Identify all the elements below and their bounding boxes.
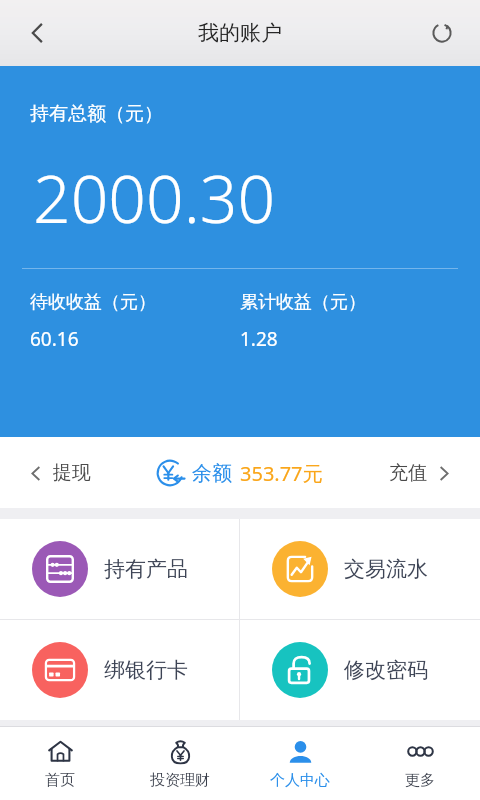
button[interactable]: 余额 (156, 459, 323, 487)
staticText: 个人中心 (270, 771, 330, 790)
button[interactable]: Back (14, 9, 62, 57)
button[interactable]: 更多 (360, 727, 480, 800)
staticText: 60.16 (30, 326, 79, 352)
staticText: 持有产品 (104, 556, 188, 582)
button[interactable]: Refresh (418, 9, 466, 57)
button[interactable]: 充值 (381, 453, 458, 493)
button[interactable]: 投资理财 (120, 727, 240, 800)
button[interactable]: 修改密码 (240, 620, 480, 720)
staticText: 首页 (45, 771, 75, 790)
staticText: 待收收益（元） (30, 291, 156, 314)
button[interactable]: 提现 (22, 453, 99, 493)
button[interactable]: 持有产品 (0, 519, 239, 619)
staticText: 余额 (192, 461, 232, 486)
button[interactable]: 首页 (0, 727, 120, 800)
staticText: 持有总额（元） (30, 102, 163, 126)
staticText: 投资理财 (150, 771, 210, 790)
staticText: 2000.30 (33, 152, 276, 242)
button[interactable]: 交易流水 (240, 519, 480, 619)
staticText: 累计收益（元） (240, 291, 366, 314)
button[interactable]: 绑银行卡 (0, 620, 239, 720)
staticText: 绑银行卡 (104, 657, 188, 683)
staticText: 更多 (405, 771, 435, 790)
staticText: 我的账户 (198, 20, 282, 46)
staticText: 充值 (389, 461, 427, 485)
staticText: 提现 (53, 461, 91, 485)
staticText: 修改密码 (344, 657, 428, 683)
staticText: 353.77元 (240, 460, 323, 487)
staticText: 交易流水 (344, 556, 428, 582)
staticText: 1.28 (240, 326, 278, 352)
button[interactable]: 个人中心 (240, 727, 360, 800)
